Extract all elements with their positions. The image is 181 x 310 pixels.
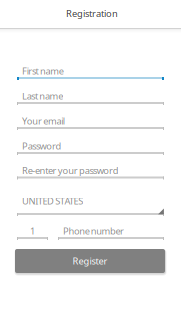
button[interactable]: Re-enter your password <box>17 158 164 182</box>
staticText: Last name <box>22 90 63 102</box>
staticText: Your email <box>22 115 65 127</box>
button[interactable]: Phone number <box>58 219 164 243</box>
button[interactable]: 1 <box>17 219 48 243</box>
staticText: Re-enter your password <box>22 164 119 177</box>
staticText: 1 <box>30 225 35 237</box>
button[interactable]: Last name <box>17 84 164 108</box>
button[interactable]: UNITED STATES <box>17 195 164 219</box>
button[interactable]: Register <box>15 249 165 273</box>
staticText: UNITED STATES <box>22 195 83 207</box>
staticText: First name <box>22 65 64 77</box>
staticText: Password <box>22 140 62 152</box>
staticText: Phone number <box>63 225 124 237</box>
staticText: Registration <box>66 7 118 20</box>
button[interactable]: Password <box>17 134 164 158</box>
staticText: Register <box>72 255 107 267</box>
button[interactable]: First name <box>17 59 164 83</box>
button[interactable]: Your email <box>17 109 164 133</box>
